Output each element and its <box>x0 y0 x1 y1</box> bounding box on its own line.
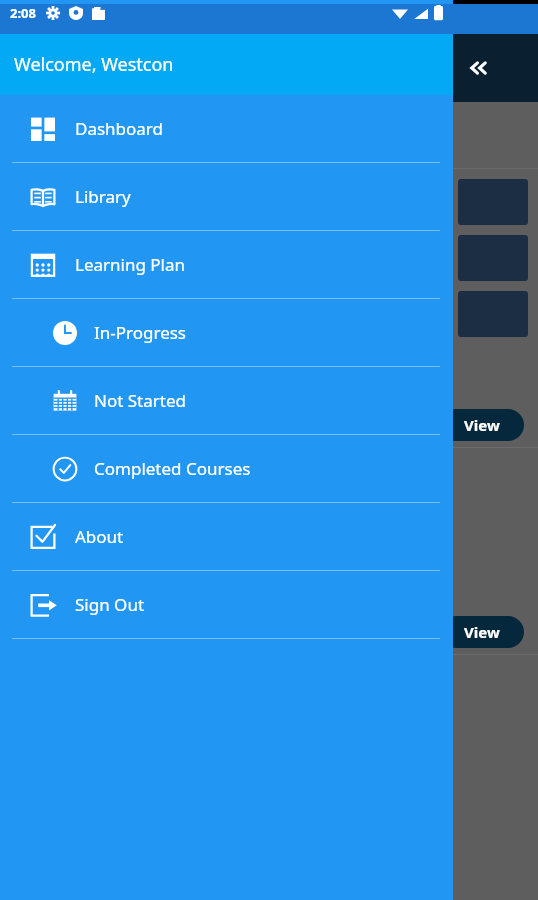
button[interactable]: In-Progress <box>0 299 453 366</box>
staticText: Dashboard <box>75 117 164 140</box>
staticText: View <box>464 415 500 435</box>
button[interactable]: About <box>0 503 453 570</box>
staticText: Completed Courses <box>94 457 251 480</box>
button[interactable]: View <box>440 409 524 441</box>
button[interactable]: Dashboard <box>0 95 453 162</box>
button[interactable]: Collapse <box>0 34 538 102</box>
button[interactable]: Learning Plan <box>0 231 453 298</box>
button[interactable]: Not Started <box>0 367 453 434</box>
staticText: Sign Out <box>75 593 145 616</box>
staticText: About <box>75 525 124 548</box>
button[interactable]: View <box>440 616 524 648</box>
staticText: Library <box>75 185 131 208</box>
staticText: In-Progress <box>94 321 187 344</box>
staticText: View <box>464 622 500 642</box>
staticText: Learning Plan <box>75 253 186 276</box>
staticText: Welcome, Westcon <box>14 52 174 77</box>
button[interactable]: Sign Out <box>0 571 453 638</box>
staticText: Not Started <box>94 389 186 412</box>
button[interactable]: Completed Courses <box>0 435 453 502</box>
button[interactable]: Library <box>0 163 453 230</box>
staticText: 2:08 <box>10 4 36 22</box>
